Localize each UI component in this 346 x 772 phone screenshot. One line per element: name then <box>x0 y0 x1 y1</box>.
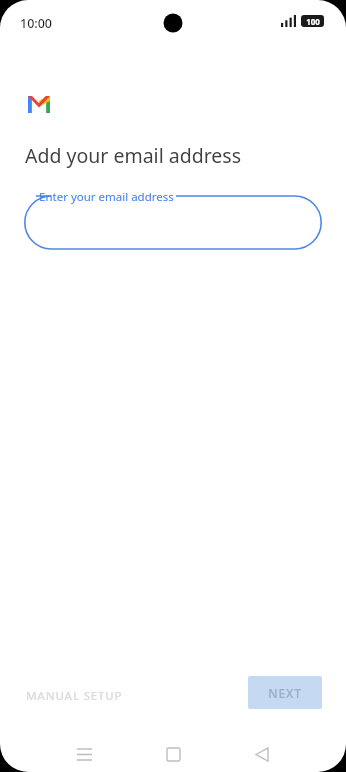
button[interactable]: Back <box>244 736 280 772</box>
staticText: 10:00 <box>20 15 53 32</box>
button[interactable]: Recent apps <box>66 736 102 772</box>
staticText: Enter your email address <box>39 189 174 205</box>
staticText: 100 <box>306 16 320 27</box>
button[interactable]: Home <box>155 736 191 772</box>
button[interactable]: MANUAL SETUP <box>24 686 125 706</box>
button[interactable]: NEXT <box>248 676 322 709</box>
staticText: Add your email address <box>25 142 242 169</box>
button[interactable]: Enter your email address <box>24 189 322 256</box>
staticText: NEXT <box>268 685 302 701</box>
